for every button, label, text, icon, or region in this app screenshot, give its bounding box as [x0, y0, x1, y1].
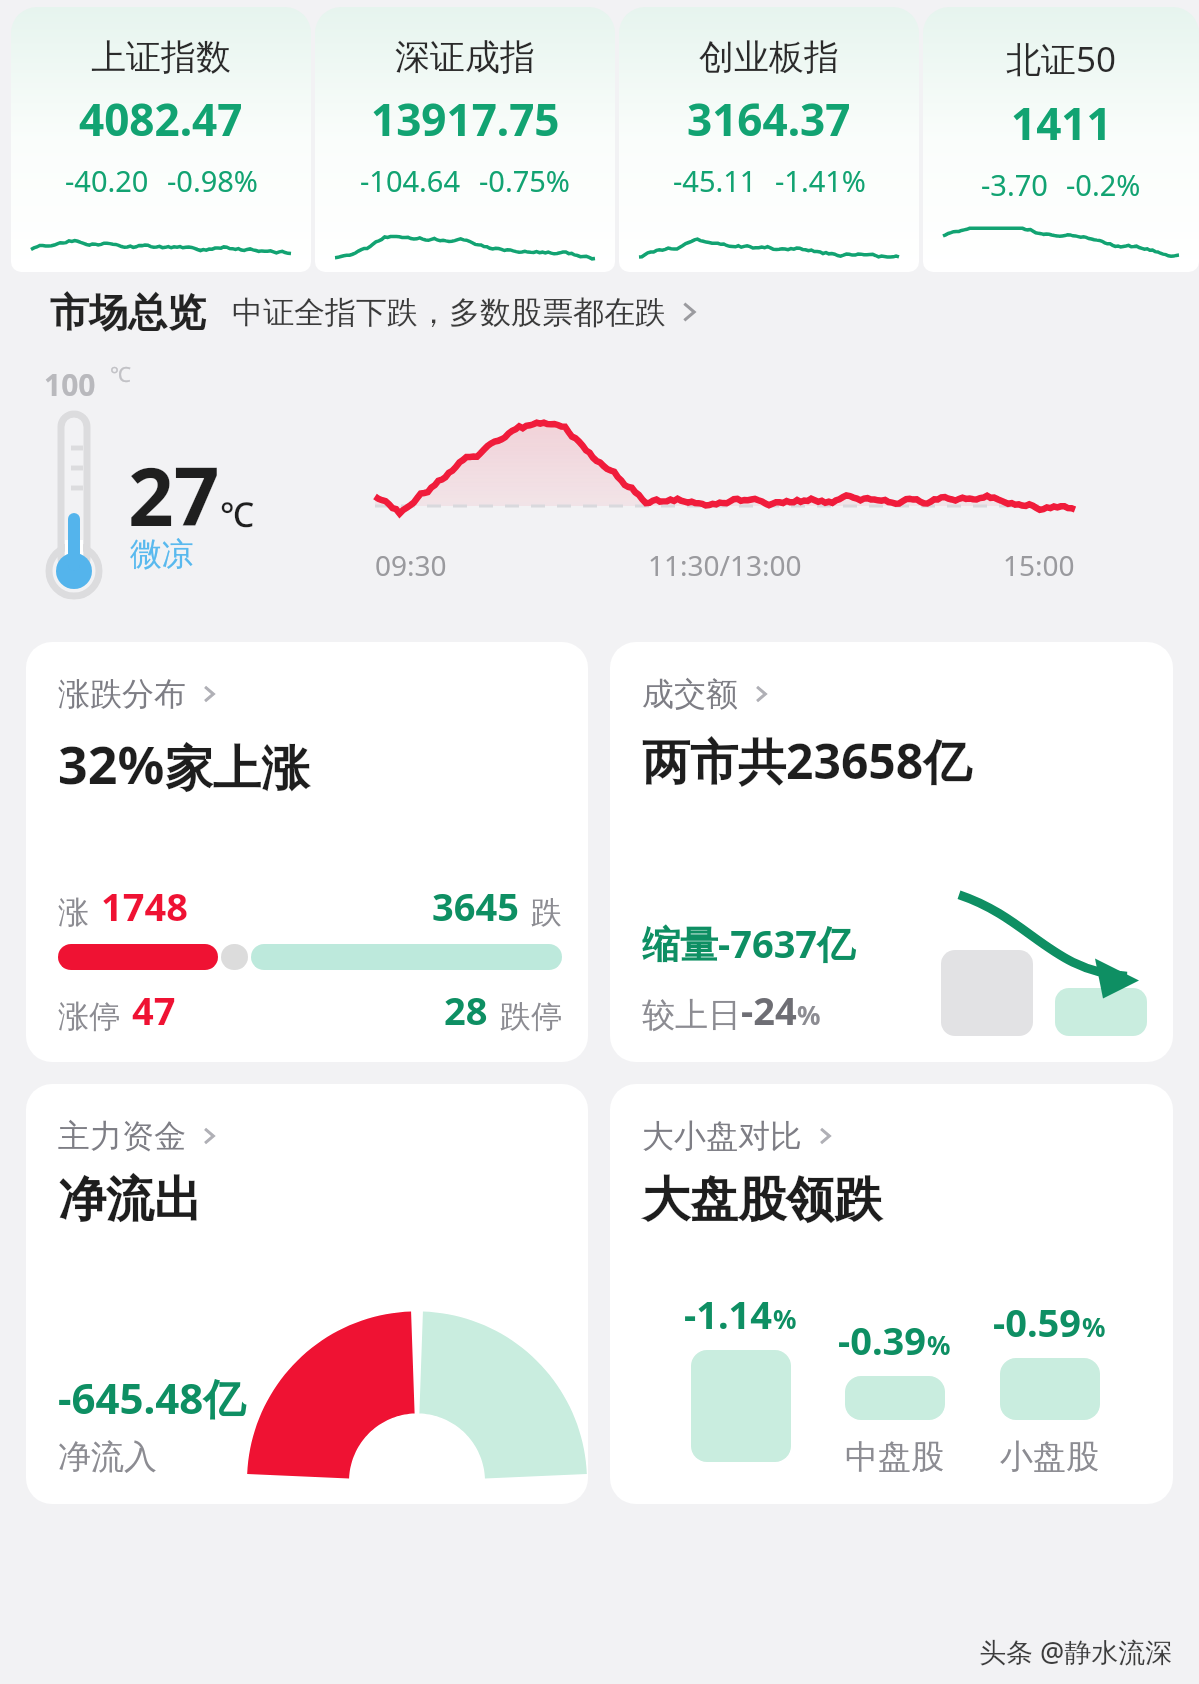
staticText: 32%	[58, 728, 165, 799]
staticText: 跌	[531, 893, 562, 932]
staticText: 中证全指下跌，多数股票都在跌	[232, 293, 666, 332]
staticText: -0.2%	[1066, 165, 1141, 204]
staticText: 较上日	[642, 994, 741, 1036]
button[interactable]: 成交额	[610, 642, 1173, 1062]
staticText: 市场总览	[50, 288, 206, 337]
staticText: 09:30	[375, 546, 447, 584]
staticText: 跌停	[500, 997, 562, 1036]
staticText: -0.39	[838, 1314, 927, 1366]
staticText: -1.14	[684, 1288, 773, 1340]
staticText: -45.11	[673, 161, 757, 200]
staticText: %	[927, 1327, 951, 1362]
staticText: -104.64	[360, 161, 461, 200]
staticText: -0.98%	[167, 161, 258, 200]
button[interactable]: 创业板指	[619, 7, 919, 272]
staticText: ℃	[220, 491, 254, 537]
staticText: 缩量-7637亿	[642, 917, 856, 969]
staticText: 47	[132, 984, 176, 1036]
staticText: 1411	[1011, 93, 1112, 153]
staticText: 两市共23658亿	[642, 728, 972, 794]
staticText: %	[773, 1301, 797, 1336]
staticText: -40.20	[65, 161, 149, 200]
staticText: 11:30/13:00	[648, 546, 802, 584]
staticText: 100	[44, 364, 96, 405]
staticText: 涨跌分布	[58, 674, 186, 714]
staticText: 15:00	[1003, 546, 1075, 584]
staticText: 3645	[432, 880, 519, 932]
button[interactable]: 北证50	[923, 7, 1199, 272]
button[interactable]: 大小盘对比	[610, 1084, 1173, 1504]
staticText: 1748	[101, 880, 188, 932]
staticText: 主力资金	[58, 1116, 186, 1156]
staticText: 中盘股	[845, 1436, 944, 1478]
staticText: 成交额	[642, 674, 738, 714]
button[interactable]: 主力资金	[26, 1084, 588, 1504]
staticText: 大小盘对比	[642, 1116, 802, 1156]
staticText: -24	[741, 984, 797, 1036]
staticText: 家上涨	[165, 739, 309, 799]
button[interactable]: 上证指数	[11, 7, 311, 272]
staticText: -0.59	[993, 1296, 1082, 1348]
staticText: 小盘股	[1000, 1436, 1099, 1478]
staticText: 涨停	[58, 997, 120, 1036]
staticText: -3.70	[981, 165, 1048, 204]
staticText: -1.41%	[775, 161, 866, 200]
staticText: 大盘股领跌	[642, 1170, 882, 1230]
button[interactable]: 市场总览	[0, 272, 1199, 352]
staticText: %	[797, 997, 821, 1032]
button[interactable]: 涨跌分布	[26, 642, 588, 1062]
button[interactable]: 深证成指	[315, 7, 615, 272]
staticText: 27	[128, 440, 220, 549]
staticText: 28	[444, 984, 488, 1036]
staticText: 头条 @静水流深	[979, 1633, 1173, 1670]
staticText: 上证指数	[91, 35, 231, 79]
staticText: 微凉	[130, 534, 194, 574]
staticText: 净流入	[58, 1436, 157, 1478]
staticText: -645.48亿	[58, 1369, 246, 1426]
staticText: 涨	[58, 893, 89, 932]
staticText: 创业板指	[699, 35, 839, 79]
staticText: 净流出	[58, 1170, 202, 1230]
staticText: 深证成指	[395, 35, 535, 79]
staticText: ℃	[110, 360, 131, 389]
staticText: 4082.47	[79, 89, 243, 149]
staticText: 13917.75	[371, 89, 560, 149]
staticText: 3164.37	[687, 89, 851, 149]
staticText: 北证50	[1006, 35, 1117, 83]
staticText: -0.75%	[479, 161, 570, 200]
staticText: %	[1082, 1309, 1106, 1344]
